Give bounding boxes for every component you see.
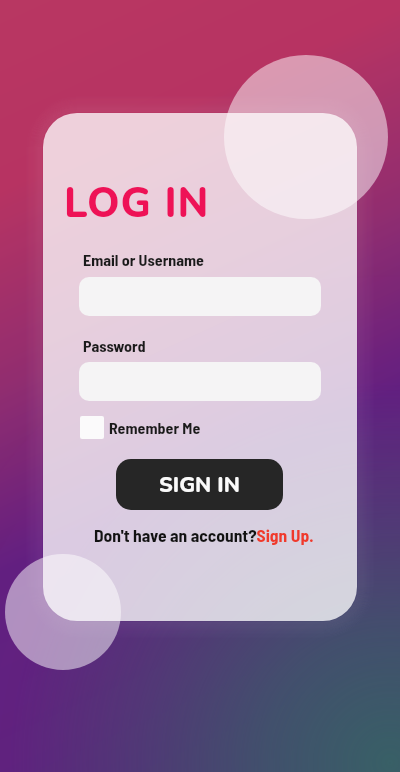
button[interactable]: Don't have an account?Sign Up.: [94, 524, 314, 545]
staticText: Remember Me: [109, 418, 201, 437]
staticText: Don't have an account?Sign Up.: [94, 524, 314, 545]
staticText: SIGN IN: [159, 470, 240, 499]
staticText: Email or Username: [83, 250, 204, 269]
staticText: Password: [83, 336, 146, 355]
button[interactable]: SIGN IN: [116, 459, 283, 510]
button[interactable]: Password input: [79, 362, 321, 401]
button[interactable]: Email or Username input: [79, 277, 321, 316]
button[interactable]: Remember Me: [80, 414, 201, 441]
staticText: LOG IN: [64, 176, 210, 232]
